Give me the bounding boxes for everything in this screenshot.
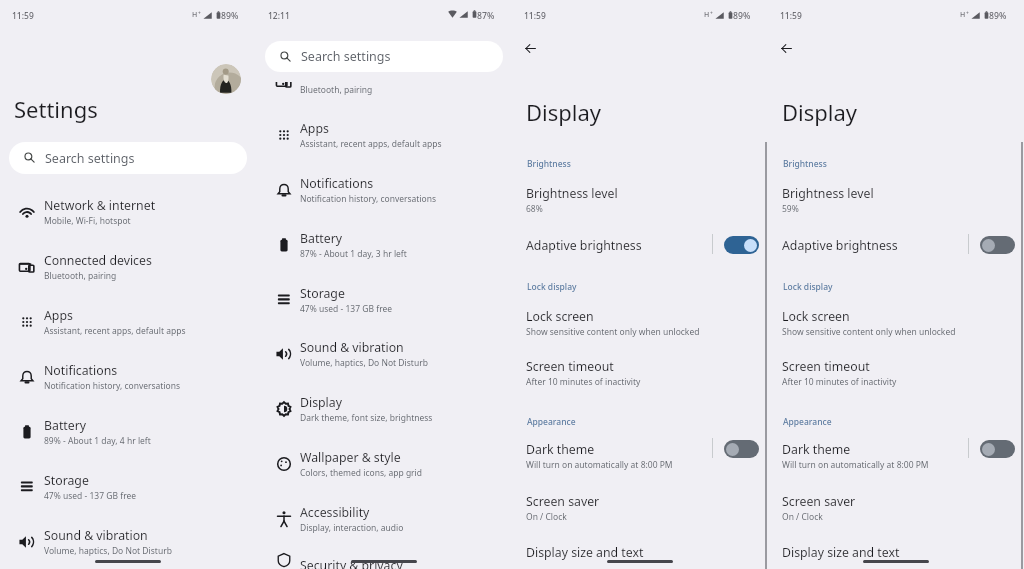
button[interactable]: Screen timeout — [512, 351, 768, 393]
button[interactable]: Lock screen — [768, 301, 1024, 343]
staticText: Will turn on automatically at 8:00 PM — [526, 459, 673, 471]
staticText: 12:11 — [268, 10, 290, 22]
staticText: Search settings — [45, 150, 135, 167]
staticText: Screen saver — [526, 493, 600, 510]
button[interactable]: Battery — [256, 220, 512, 268]
staticText: 59% — [782, 203, 799, 215]
staticText: Dark theme, font size, brightness — [300, 412, 433, 424]
staticText: Volume, haptics, Do Not Disturb — [44, 545, 172, 557]
staticText: Display, interaction, audio — [300, 522, 404, 534]
staticText: Notifications — [44, 362, 118, 379]
button[interactable]: Accessibility — [256, 494, 512, 542]
button[interactable]: Dark theme — [980, 440, 1015, 458]
button[interactable]: Bluetooth, pairing — [256, 82, 512, 96]
staticText: Display size and text — [782, 544, 900, 561]
staticText: Dark theme — [782, 441, 851, 458]
button[interactable]: Screen saver — [768, 486, 1024, 528]
staticText: Screen timeout — [526, 358, 614, 375]
button[interactable]: Dark theme — [724, 440, 759, 458]
button[interactable]: Apps — [0, 297, 256, 345]
button[interactable]: Display size and text — [512, 537, 768, 569]
staticText: Show sensitive content only when unlocke… — [526, 326, 700, 338]
staticText: Apps — [300, 120, 329, 137]
button[interactable]: Search settings — [265, 41, 503, 72]
staticText: Adaptive brightness — [782, 237, 898, 254]
button[interactable]: Account — [211, 64, 241, 94]
staticText: Screen saver — [782, 493, 856, 510]
button[interactable]: Dark theme — [512, 434, 768, 476]
button[interactable]: Wallpaper & style — [256, 439, 512, 487]
staticText: Brightness — [527, 158, 571, 170]
staticText: Adaptive brightness — [526, 237, 642, 254]
staticText: Storage — [300, 285, 345, 302]
staticText: Lock display — [783, 281, 833, 293]
staticText: Volume, haptics, Do Not Disturb — [300, 357, 428, 369]
staticText: Wallpaper & style — [300, 449, 401, 466]
button[interactable]: Adaptive brightness — [724, 236, 759, 254]
staticText: 11:59 — [780, 10, 802, 22]
staticText: Dark theme — [526, 441, 595, 458]
button[interactable]: Brightness level — [768, 178, 1024, 220]
staticText: 11:59 — [12, 10, 34, 22]
button[interactable]: Adaptive brightness — [980, 236, 1015, 254]
staticText: Lock screen — [526, 308, 594, 325]
staticText: After 10 minutes of inactivity — [782, 376, 897, 388]
button[interactable]: Brightness level — [512, 178, 768, 220]
staticText: 89% — [733, 10, 751, 22]
button[interactable]: Display size and text — [768, 537, 1024, 569]
staticText: 87% - About 1 day, 3 hr left — [300, 248, 407, 260]
staticText: Notification history, conversations — [300, 193, 437, 205]
button[interactable]: Connected devices — [0, 242, 256, 290]
button[interactable]: Notifications — [256, 165, 512, 213]
staticText: + — [966, 10, 969, 17]
staticText: Bluetooth, pairing — [44, 270, 117, 282]
button[interactable]: Screen saver — [512, 486, 768, 528]
button[interactable]: Search settings — [9, 142, 247, 174]
button[interactable]: Display — [256, 384, 512, 432]
button[interactable]: Notifications — [0, 352, 256, 400]
button[interactable]: Network & internet — [0, 187, 256, 235]
staticText: Brightness level — [526, 185, 618, 202]
staticText: 89% - About 1 day, 4 hr left — [44, 435, 151, 447]
button[interactable]: Back — [525, 43, 536, 54]
staticText: Sound & vibration — [300, 339, 404, 356]
button[interactable]: Battery — [0, 407, 256, 455]
button[interactable]: Back — [781, 43, 792, 54]
button[interactable]: Sound & vibration — [0, 517, 256, 565]
staticText: Security & privacy — [300, 557, 403, 569]
staticText: Display — [526, 97, 602, 127]
staticText: H — [704, 10, 710, 20]
button[interactable]: Sound & vibration — [256, 329, 512, 377]
button[interactable]: Screen timeout — [768, 351, 1024, 393]
staticText: Battery — [44, 417, 87, 434]
staticText: Sound & vibration — [44, 527, 148, 544]
staticText: + — [198, 10, 201, 17]
staticText: Display — [300, 394, 342, 411]
staticText: Colors, themed icons, app grid — [300, 467, 423, 479]
staticText: Will turn on automatically at 8:00 PM — [782, 459, 929, 471]
staticText: Display — [782, 97, 858, 127]
staticText: Mobile, Wi-Fi, hotspot — [44, 215, 131, 227]
staticText: Search settings — [301, 48, 391, 65]
button[interactable]: Dark theme — [768, 434, 1024, 476]
staticText: Display size and text — [526, 544, 644, 561]
staticText: Notifications — [300, 175, 374, 192]
staticText: 47% used - 137 GB free — [300, 303, 393, 315]
button[interactable]: Lock screen — [512, 301, 768, 343]
staticText: H — [960, 10, 966, 20]
staticText: 87% — [477, 10, 495, 22]
button[interactable]: Adaptive brightness — [768, 230, 1024, 272]
button[interactable]: Apps — [256, 110, 512, 158]
staticText: After 10 minutes of inactivity — [526, 376, 641, 388]
staticText: Battery — [300, 230, 343, 247]
button[interactable]: Storage — [256, 275, 512, 323]
button[interactable]: Adaptive brightness — [512, 230, 768, 272]
staticText: Assistant, recent apps, default apps — [300, 138, 442, 150]
staticText: + — [710, 10, 713, 17]
button[interactable]: Storage — [0, 462, 256, 510]
staticText: 47% used - 137 GB free — [44, 490, 137, 502]
staticText: 11:59 — [524, 10, 546, 22]
staticText: On / Clock — [782, 511, 823, 523]
staticText: 68% — [526, 203, 543, 215]
button[interactable]: Security & privacy — [256, 546, 512, 569]
